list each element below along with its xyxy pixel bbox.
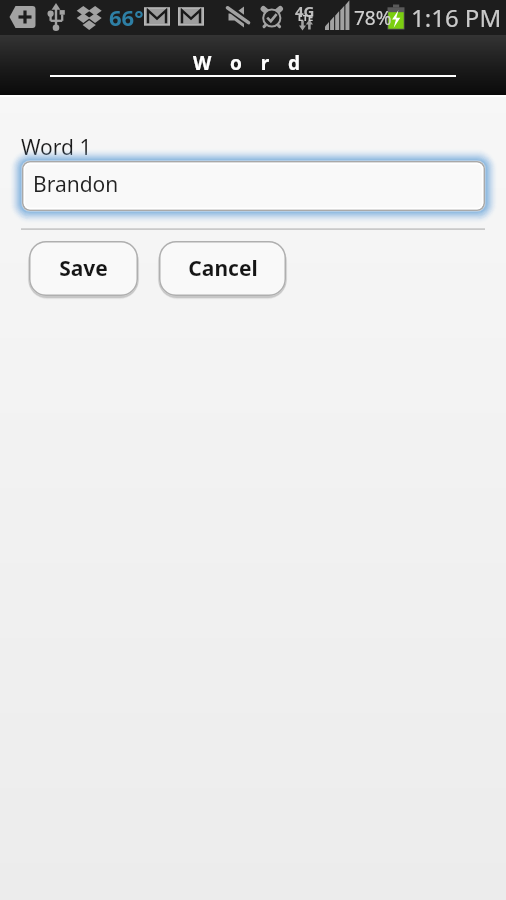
staticText: Brandon [33, 170, 119, 199]
staticText: Save [59, 254, 108, 283]
button[interactable]: Brandon [22, 161, 485, 211]
staticText: Word [193, 50, 319, 76]
staticText: 1:16 PM [411, 1, 502, 34]
staticText: Word 1 [21, 133, 92, 162]
staticText: 4G [295, 1, 315, 21]
button[interactable]: Save [26, 238, 141, 299]
staticText: LTE [298, 11, 314, 23]
staticText: 78% [354, 5, 392, 31]
staticText: Cancel [188, 254, 258, 283]
staticText: 66° [109, 2, 144, 32]
button[interactable]: Cancel [156, 238, 289, 299]
